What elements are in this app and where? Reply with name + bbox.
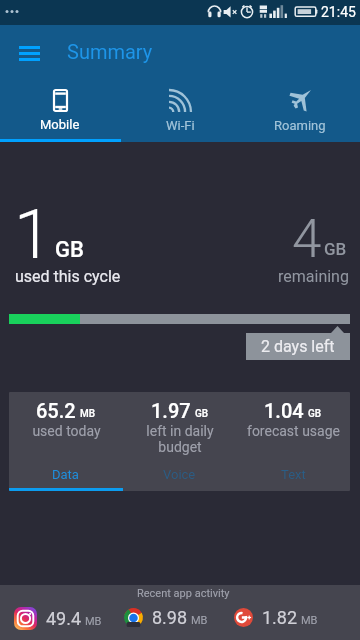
staticText: MB bbox=[191, 614, 208, 627]
staticText: Wi-Fi bbox=[166, 118, 195, 133]
button[interactable]: Data bbox=[9, 457, 122, 491]
staticText: used today bbox=[32, 423, 101, 439]
staticText: 21:45 bbox=[321, 4, 356, 20]
button[interactable]: Wi-Fi bbox=[120, 78, 240, 142]
staticText: 2 days left bbox=[261, 337, 335, 356]
staticText: Voice bbox=[163, 467, 196, 482]
staticText: GB bbox=[324, 239, 347, 259]
staticText: MB bbox=[80, 408, 96, 420]
staticText: Data bbox=[52, 467, 79, 482]
button[interactable]: 2 days left bbox=[246, 333, 350, 360]
staticText: Recent app activity bbox=[137, 587, 230, 600]
staticText: MB bbox=[301, 614, 318, 627]
button[interactable]: 8.98 bbox=[124, 607, 208, 628]
staticText: 8.98 bbox=[152, 607, 188, 628]
button[interactable]: Mobile bbox=[0, 78, 120, 142]
staticText: 1.04 bbox=[264, 399, 304, 422]
button[interactable]: Text bbox=[236, 457, 350, 491]
staticText: GB bbox=[195, 408, 209, 420]
staticText: remaining bbox=[278, 267, 349, 286]
staticText: 49.4 bbox=[46, 608, 82, 629]
staticText: Mobile bbox=[40, 117, 80, 132]
staticText: used this cycle bbox=[15, 267, 121, 286]
button[interactable]: 49.4 bbox=[14, 607, 102, 630]
staticText: forecast usage bbox=[247, 423, 340, 439]
staticText: 4 bbox=[292, 208, 322, 270]
button[interactable]: Roaming bbox=[240, 78, 360, 142]
staticText: Roaming bbox=[274, 118, 326, 133]
staticText: 1.82 bbox=[262, 607, 298, 628]
staticText: GB bbox=[55, 237, 84, 263]
staticText: GB bbox=[308, 408, 322, 420]
staticText: Summary bbox=[67, 40, 153, 63]
staticText: 1.97 bbox=[151, 399, 191, 422]
button[interactable]: 1.82 bbox=[234, 607, 318, 628]
button[interactable]: Open navigation menu bbox=[7, 38, 51, 69]
button[interactable]: Voice bbox=[122, 457, 236, 491]
staticText: Text bbox=[281, 467, 306, 482]
staticText: 65.2 bbox=[36, 399, 76, 422]
staticText: left in daily budget bbox=[131, 423, 229, 455]
staticText: 1 bbox=[14, 195, 52, 275]
staticText: MB bbox=[85, 615, 102, 628]
